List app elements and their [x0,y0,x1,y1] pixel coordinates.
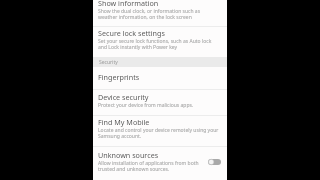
staticText: Device security [98,92,149,102]
staticText: Locate and control your device remotely … [98,127,219,140]
staticText: Allow installation of applications from … [98,160,199,173]
staticText: Unknown sources [98,150,159,160]
button[interactable]: Secure lock settings [93,27,227,57]
staticText: Show the dual clock, or information such… [98,8,201,21]
staticText: Set your secure lock functions, such as … [98,38,212,51]
button[interactable]: Find My Mobile [93,116,227,146]
button[interactable]: Fingerprints [93,67,227,89]
staticText: Security [99,59,118,66]
staticText: Show information [98,0,159,8]
staticText: Protect your device from malicious apps. [98,102,194,109]
button[interactable]: Show information [93,0,227,26]
staticText: Secure lock settings [98,28,165,38]
button[interactable]: Unknown sources switch [208,159,221,165]
button[interactable]: Device security [93,90,227,115]
staticText: Fingerprints [98,72,140,82]
button[interactable]: Unknown sources [93,147,227,180]
staticText: Find My Mobile [98,117,150,127]
